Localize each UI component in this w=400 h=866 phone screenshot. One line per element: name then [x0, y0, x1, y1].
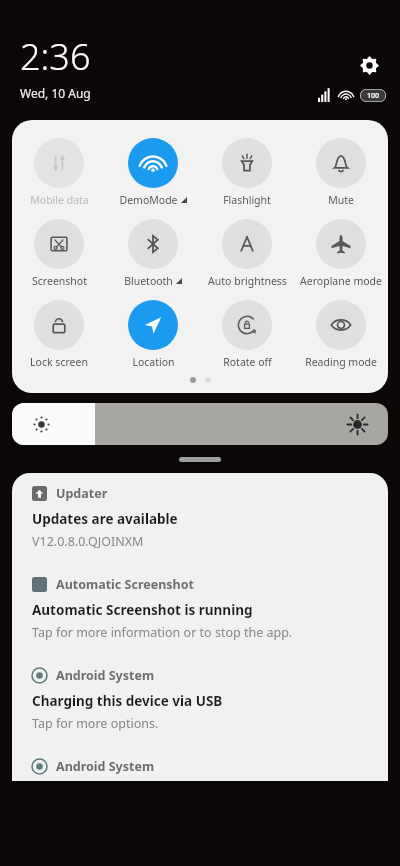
staticText: 100 — [367, 91, 380, 101]
button[interactable] — [12, 403, 388, 445]
staticText: Updater — [56, 485, 108, 502]
button[interactable]: Android System — [12, 746, 388, 781]
button[interactable]: Bluetooth — [106, 213, 200, 294]
staticText: Wed, 10 Aug — [20, 85, 91, 101]
staticText: Android System — [56, 667, 155, 684]
staticText: Tap for more information or to stop the … — [32, 624, 293, 641]
staticText: Charging this device via USB — [32, 692, 223, 710]
button[interactable]: Lock screen — [12, 294, 106, 375]
staticText: Lock screen — [30, 355, 88, 369]
button[interactable]: Reading mode — [294, 294, 388, 375]
staticText: Auto brightness — [208, 274, 287, 288]
staticText: Tap for more options. — [32, 715, 159, 732]
button[interactable]: Android System — [12, 655, 388, 746]
staticText: Mobile data — [30, 193, 89, 207]
staticText: Reading mode — [305, 355, 377, 369]
staticText: Automatic Screenshot — [56, 576, 194, 593]
staticText: 2:36 — [20, 32, 91, 81]
button[interactable]: Mobile data — [12, 132, 106, 213]
staticText: Location — [132, 355, 175, 369]
staticText: Updates are available — [32, 510, 178, 528]
staticText: Mute — [328, 193, 354, 207]
button[interactable]: Auto brightness — [200, 213, 294, 294]
staticText: Flashlight — [223, 193, 271, 207]
button[interactable]: Screenshot — [12, 213, 106, 294]
staticText: Automatic Screenshot is running — [32, 601, 253, 619]
button[interactable]: Mute — [294, 132, 388, 213]
button[interactable]: Automatic Screenshot — [12, 564, 388, 655]
button[interactable]: Settings — [352, 48, 386, 82]
staticText: Rotate off — [223, 355, 272, 369]
button[interactable]: Location — [106, 294, 200, 375]
staticText: Bluetooth — [124, 274, 173, 288]
staticText: V12.0.8.0.QJOINXM — [32, 533, 144, 550]
button[interactable]: Rotate off — [200, 294, 294, 375]
button[interactable]: Flashlight — [200, 132, 294, 213]
button[interactable]: DemoMode — [106, 132, 200, 213]
button[interactable]: Aeroplane mode — [294, 213, 388, 294]
staticText: Screenshot — [32, 274, 87, 288]
button[interactable]: Updater — [12, 473, 388, 564]
staticText: Android System — [56, 758, 155, 775]
staticText: DemoMode — [119, 193, 178, 207]
staticText: Aeroplane mode — [300, 274, 382, 288]
